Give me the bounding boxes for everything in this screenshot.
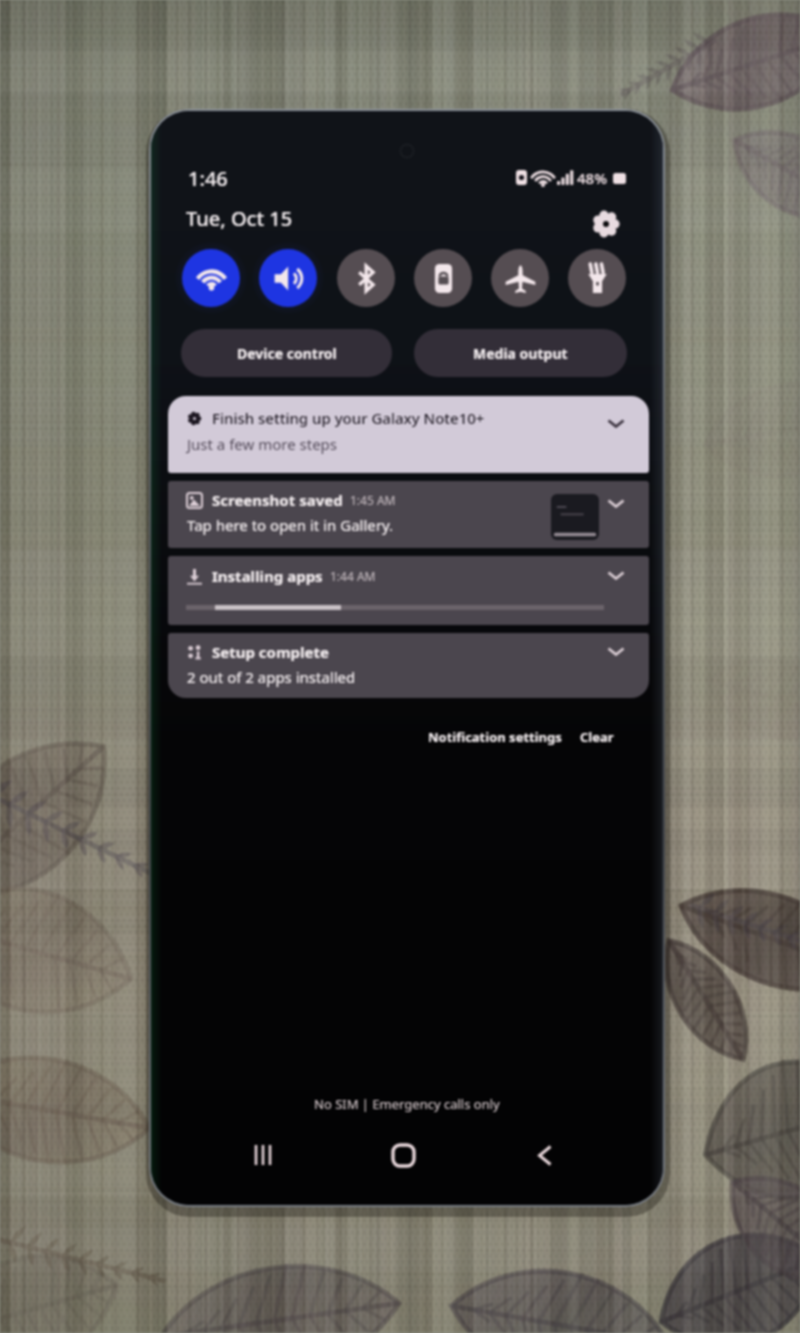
- staticText: 2 out of 2 apps installed: [187, 667, 356, 687]
- staticText: 1:45 AM: [350, 492, 396, 508]
- button[interactable]: Finish setting up your Galaxy Note10+: [168, 396, 649, 473]
- staticText: Tue, Oct 15: [186, 205, 293, 232]
- button[interactable]: Device control: [181, 329, 392, 377]
- staticText: Finish setting up your Galaxy Note10+: [212, 408, 485, 428]
- button[interactable]: Wi-Fi: [182, 249, 240, 307]
- staticText: 1:46: [188, 165, 228, 192]
- button[interactable]: Home: [383, 1135, 423, 1175]
- button[interactable]: Airplane mode: [491, 249, 549, 307]
- button[interactable]: Clear: [572, 722, 622, 752]
- button[interactable]: Sound: [259, 249, 317, 307]
- button[interactable]: Setup complete: [168, 633, 649, 698]
- button[interactable]: Media output: [414, 329, 627, 377]
- staticText: Tap here to open it in Gallery.: [187, 515, 394, 535]
- staticText: No SIM | Emergency calls only: [314, 1095, 500, 1113]
- staticText: Media output: [473, 344, 568, 363]
- button[interactable]: Auto rotate lock: [414, 249, 472, 307]
- button[interactable]: Back: [525, 1135, 565, 1175]
- button[interactable]: Expand: [601, 488, 631, 518]
- staticText: Clear: [580, 728, 614, 746]
- button[interactable]: Recents: [243, 1135, 283, 1175]
- button[interactable]: Expand: [601, 408, 631, 438]
- button[interactable]: Notification settings: [420, 722, 570, 752]
- staticText: Device control: [237, 344, 337, 363]
- button[interactable]: Settings: [591, 209, 621, 239]
- button[interactable]: Expand: [601, 560, 631, 590]
- staticText: Just a few more steps: [187, 434, 338, 454]
- button[interactable]: Expand: [601, 636, 631, 666]
- button[interactable]: Flashlight: [568, 249, 626, 307]
- staticText: Notification settings: [428, 728, 562, 746]
- staticText: 48%: [577, 168, 607, 188]
- staticText: Setup complete: [212, 642, 329, 662]
- button[interactable]: Installing apps: [168, 556, 649, 625]
- button[interactable]: Screenshot saved: [168, 481, 649, 548]
- button[interactable]: Bluetooth: [337, 249, 395, 307]
- staticText: 1:44 AM: [330, 568, 376, 584]
- staticText: Installing apps: [212, 566, 323, 586]
- staticText: Screenshot saved: [212, 490, 343, 510]
